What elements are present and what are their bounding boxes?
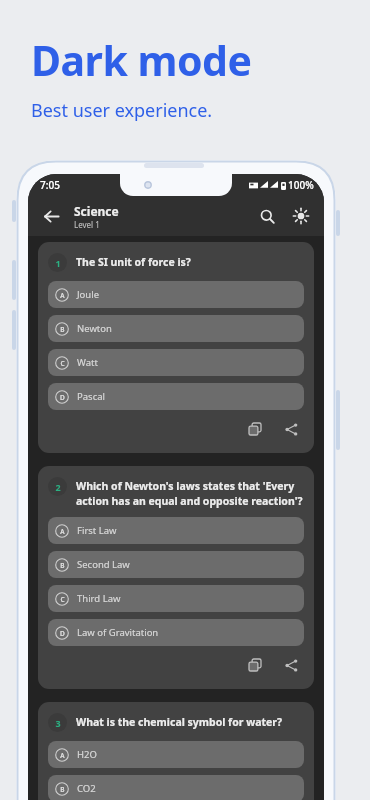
staticText: Which of Newton's laws states that 'Ever… [76,479,304,508]
button[interactable]: B [48,775,304,800]
staticText: 1 [55,257,61,269]
button[interactable]: Share [278,652,304,678]
staticText: Best user experience. [31,98,213,123]
button[interactable]: D [48,383,304,410]
staticText: 100% [288,178,314,192]
staticText: 7:05 [40,178,60,192]
button[interactable]: B [48,315,304,342]
staticText: Second Law [77,558,130,571]
staticText: Science [74,203,119,219]
staticText: First Law [77,524,117,537]
button[interactable]: B [48,551,304,578]
button[interactable]: C [48,585,304,612]
staticText: A [60,527,65,536]
button[interactable]: C [48,349,304,376]
staticText: Third Law [77,592,121,605]
staticText: What is the chemical symbol for water? [76,715,304,729]
button[interactable]: A [48,281,304,308]
button[interactable]: Share [278,416,304,442]
staticText: B [60,561,65,570]
staticText: D [60,393,65,402]
button[interactable]: Copy [242,416,268,442]
button[interactable]: D [48,619,304,646]
staticText: A [60,291,65,300]
staticText: Newton [77,322,112,335]
staticText: Joule [77,288,100,301]
staticText: B [60,785,65,794]
staticText: C [60,595,65,604]
button[interactable]: Copy [242,652,268,678]
staticText: A [60,751,65,760]
staticText: Law of Gravitation [77,626,159,639]
staticText: H2O [77,748,97,761]
staticText: Dark mode [31,32,252,88]
staticText: Level 1 [74,219,100,230]
button[interactable]: Search [252,201,282,231]
staticText: The SI unit of force is? [76,255,304,269]
staticText: C [60,359,65,368]
staticText: B [60,325,65,334]
staticText: 2 [55,481,61,493]
staticText: Watt [77,356,98,369]
staticText: D [60,629,65,638]
button[interactable]: Back [36,201,66,231]
button[interactable]: Toggle dark mode [286,201,316,231]
button[interactable]: A [48,741,304,768]
staticText: Pascal [77,390,105,403]
staticText: CO2 [77,782,96,795]
staticText: 3 [55,717,61,729]
button[interactable]: A [48,517,304,544]
